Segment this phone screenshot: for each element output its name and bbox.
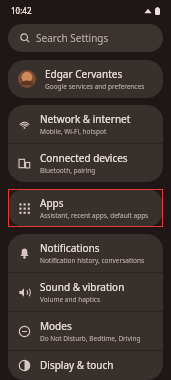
staticText: Notification history, conversations [40, 256, 145, 265]
staticText: Assistant, recent apps, default apps [40, 211, 149, 220]
staticText: Edgar Cervantes [45, 67, 123, 81]
button[interactable]: Modes [8, 312, 163, 350]
staticText: Bluetooth, pairing [40, 166, 96, 175]
staticText: Connected devices [40, 151, 128, 165]
staticText: Mobile, Wi-Fi, hotspot [40, 127, 107, 136]
staticText: 10:42 [11, 5, 32, 16]
button[interactable]: Network & internet [8, 105, 163, 143]
button[interactable]: Search Settings [8, 24, 163, 52]
staticText: Modes [40, 319, 72, 333]
staticText: Do Not Disturb, Bedtime, Driving [40, 334, 141, 343]
staticText: Notifications [40, 241, 100, 255]
button[interactable]: Sound & vibration [8, 273, 163, 311]
staticText: Google services and preferences [45, 82, 145, 91]
button[interactable]: Display & touch [8, 351, 163, 380]
staticText: Network & internet [40, 112, 131, 126]
staticText: Apps [40, 196, 64, 210]
staticText: Sound & vibration [40, 280, 125, 294]
staticText: Display & touch [40, 358, 114, 372]
staticText: Search Settings [36, 31, 109, 45]
staticText: Volume and haptics [40, 295, 101, 304]
button[interactable]: Edgar Cervantes [8, 60, 163, 98]
button[interactable]: Connected devices [8, 144, 163, 182]
button[interactable]: Apps [8, 189, 163, 227]
button[interactable]: Notifications [8, 234, 163, 272]
